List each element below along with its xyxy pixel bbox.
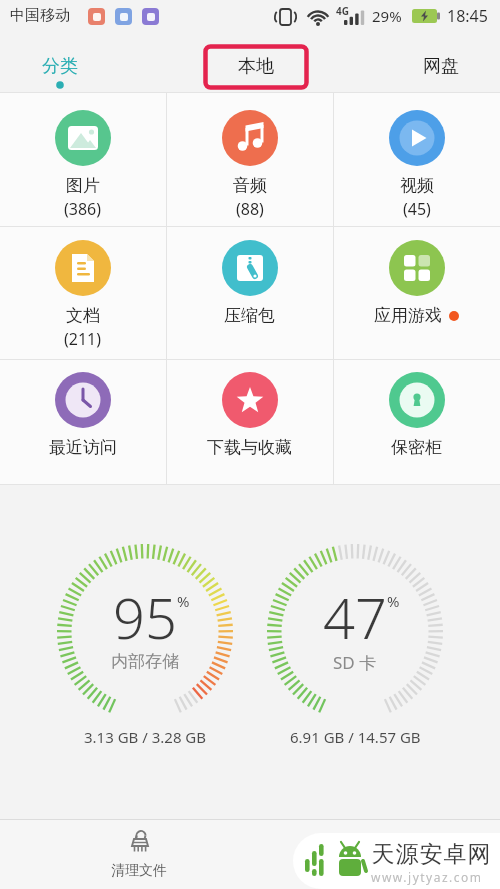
button[interactable]: 视频 (333, 92, 500, 226)
staticText: (45) (403, 198, 431, 220)
button[interactable]: 应用游戏 (333, 226, 500, 359)
staticText: 网盘 (423, 55, 459, 78)
staticText: 图片 (66, 175, 100, 196)
staticText: 95 (113, 579, 177, 655)
staticText: 清理文件 (111, 862, 167, 880)
staticText: 内部存储 (111, 651, 179, 672)
staticText: 压缩包 (224, 305, 275, 326)
staticText: 18:45 (447, 5, 488, 27)
staticText: (386) (64, 198, 102, 220)
staticText: 天源安卓网 (371, 840, 491, 869)
staticText: 4G (336, 4, 349, 18)
button[interactable]: 文档 (0, 226, 166, 359)
staticText: 应用游戏 (374, 305, 442, 326)
button[interactable]: 分类 (24, 46, 96, 86)
staticText: SD 卡 (333, 651, 377, 674)
button[interactable]: 清理文件 (99, 829, 179, 880)
staticText: 29% (372, 6, 402, 26)
staticText: (211) (64, 328, 102, 350)
staticText: 视频 (400, 175, 434, 196)
staticText: 音频 (233, 175, 267, 196)
staticText: 47 (323, 579, 387, 655)
staticText: 下载与收藏 (207, 437, 292, 458)
staticText: % (177, 591, 190, 611)
button[interactable]: 压缩包 (166, 226, 333, 359)
button[interactable]: 下载与收藏 (166, 359, 333, 485)
staticText: 3.13 GB / 3.28 GB (84, 727, 207, 747)
staticText: 最近访问 (49, 437, 117, 458)
staticText: 6.91 GB / 14.57 GB (290, 727, 421, 747)
button[interactable]: 保密柜 (333, 359, 500, 485)
button[interactable]: 图片 (0, 92, 166, 226)
button[interactable]: 音频 (166, 92, 333, 226)
staticText: 中国移动 (10, 6, 70, 25)
staticText: 文档 (66, 305, 100, 326)
button[interactable]: 本地 (206, 46, 306, 86)
staticText: 分类 (42, 55, 78, 78)
staticText: (88) (236, 198, 264, 220)
staticText: www.jytyaz.com (371, 869, 483, 885)
staticText: 保密柜 (391, 437, 442, 458)
staticText: 本地 (238, 55, 274, 78)
button[interactable]: 最近访问 (0, 359, 166, 485)
staticText: % (387, 591, 400, 611)
button[interactable]: 网盘 (400, 46, 482, 86)
